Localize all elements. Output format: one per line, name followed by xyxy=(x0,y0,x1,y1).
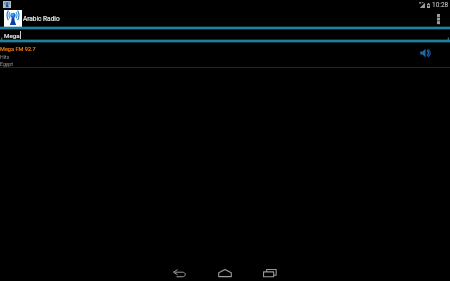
button[interactable]: Search stations xyxy=(0,29,450,43)
button[interactable]: Mega FM 92.7 xyxy=(0,44,450,68)
button[interactable]: Back xyxy=(164,262,195,281)
staticText: 10:28 xyxy=(432,1,449,9)
staticText: Egypt xyxy=(0,61,13,67)
staticText: Mega xyxy=(4,32,20,39)
button[interactable]: Play station xyxy=(417,44,435,62)
staticText: Hits xyxy=(0,54,10,60)
staticText: Arabic Radio xyxy=(23,15,60,23)
button[interactable]: More options xyxy=(426,9,450,28)
staticText: Mega FM 92.7 xyxy=(0,46,36,53)
button[interactable]: Home xyxy=(209,262,240,281)
button[interactable]: Recent apps xyxy=(254,262,285,281)
